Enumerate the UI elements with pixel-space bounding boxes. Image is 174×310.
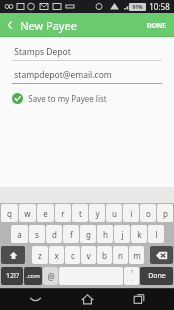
- button[interactable]: q: [1, 204, 18, 222]
- staticText: v: [86, 250, 91, 261]
- button[interactable]: n: [113, 246, 128, 264]
- button[interactable]: Back: [18, 288, 52, 310]
- staticText: c: [71, 250, 75, 261]
- staticText: t: [79, 208, 82, 219]
- staticText: a: [17, 229, 22, 240]
- button[interactable]: Back: [0, 13, 20, 37]
- staticText: j: [121, 229, 124, 240]
- button[interactable]: Punctuation: [124, 267, 139, 285]
- button[interactable]: o: [140, 204, 156, 222]
- staticText: stampdepot@email.com: [14, 69, 112, 81]
- staticText: n: [118, 250, 123, 261]
- staticText: b: [102, 250, 107, 261]
- button[interactable]: Recents: [122, 288, 156, 310]
- button[interactable]: @: [43, 267, 58, 285]
- staticText: e: [43, 208, 48, 219]
- button[interactable]: p: [157, 204, 173, 222]
- button[interactable]: f: [63, 225, 79, 243]
- staticText: s: [35, 229, 39, 240]
- staticText: u: [112, 208, 117, 219]
- button[interactable]: .com: [24, 267, 42, 285]
- button[interactable]: u: [106, 204, 122, 222]
- staticText: .com: [26, 272, 40, 280]
- button[interactable]: t: [72, 204, 88, 222]
- staticText: i: [130, 208, 133, 219]
- staticText: DONE: [147, 21, 166, 30]
- staticText: 12!?: [6, 271, 19, 281]
- button[interactable]: Stamps Depot: [12, 45, 162, 61]
- button[interactable]: d: [46, 225, 62, 243]
- staticText: p: [163, 208, 168, 219]
- staticText: 10:58: [149, 1, 170, 12]
- staticText: Save to my Payee list: [28, 93, 107, 104]
- button[interactable]: a: [11, 225, 28, 243]
- button[interactable]: v: [81, 246, 96, 264]
- button[interactable]: Save to my Payee list: [12, 93, 162, 104]
- staticText: q: [7, 208, 12, 219]
- staticText: h: [103, 229, 108, 240]
- button[interactable]: m: [129, 246, 144, 264]
- staticText: x: [54, 250, 59, 261]
- staticText: @: [47, 271, 55, 282]
- button[interactable]: i: [123, 204, 139, 222]
- button[interactable]: l: [148, 225, 164, 243]
- button[interactable]: 12!?: [1, 267, 23, 285]
- staticText: New Payee: [20, 18, 77, 33]
- button[interactable]: b: [97, 246, 112, 264]
- button[interactable]: y: [89, 204, 105, 222]
- button[interactable]: Home: [70, 288, 104, 310]
- staticText: Done: [148, 271, 166, 281]
- button[interactable]: Backspace: [150, 246, 173, 264]
- button[interactable]: stampdepot@email.com: [12, 68, 162, 84]
- staticText: ?: [130, 269, 133, 276]
- button[interactable]: Shift: [1, 246, 25, 264]
- staticText: Stamps Depot: [14, 46, 71, 58]
- button[interactable]: z: [32, 246, 48, 264]
- button[interactable]: r: [55, 204, 71, 222]
- button[interactable]: Done: [140, 267, 173, 285]
- button[interactable]: g: [80, 225, 96, 243]
- button[interactable]: c: [65, 246, 80, 264]
- staticText: l: [155, 229, 158, 240]
- staticText: y: [95, 208, 100, 219]
- button[interactable]: j: [114, 225, 130, 243]
- button[interactable]: e: [37, 204, 54, 222]
- staticText: w: [24, 208, 31, 219]
- button[interactable]: DONE: [139, 13, 174, 37]
- staticText: z: [38, 250, 42, 261]
- button[interactable]: x: [49, 246, 64, 264]
- staticText: .: [131, 276, 133, 283]
- staticText: 91%: [132, 4, 143, 11]
- staticText: o: [146, 208, 151, 219]
- button[interactable]: w: [19, 204, 36, 222]
- staticText: m: [133, 250, 141, 261]
- staticText: k: [137, 229, 142, 240]
- staticText: g: [86, 229, 91, 240]
- staticText: d: [52, 229, 57, 240]
- button[interactable]: h: [97, 225, 113, 243]
- staticText: f: [70, 229, 73, 240]
- staticText: r: [61, 208, 65, 219]
- button[interactable]: s: [29, 225, 45, 243]
- button[interactable]: k: [131, 225, 147, 243]
